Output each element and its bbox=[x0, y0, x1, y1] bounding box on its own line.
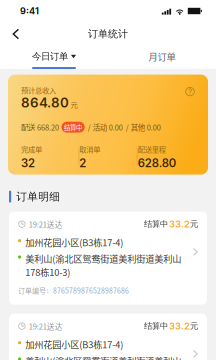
button[interactable]: 今日订单 bbox=[0, 46, 108, 69]
staticText: 2 bbox=[79, 156, 86, 170]
staticText: 月订单 bbox=[148, 50, 175, 63]
staticText: 33.2 bbox=[169, 320, 190, 332]
button[interactable]: 19:21送达 bbox=[9, 212, 207, 305]
staticText: 美利山(渝北区鸳鸯街道美利街道美利山178栋10-3) bbox=[25, 252, 181, 278]
staticText: 美利山(渝北区鸳鸯街道美利街道美利山178栋10-3) bbox=[25, 354, 181, 360]
staticText: 结算中 bbox=[144, 219, 168, 229]
staticText: 订单统计 bbox=[88, 28, 128, 40]
staticText: / 活动 0.00 bbox=[88, 122, 123, 133]
staticText: 订单编号：8765789876528987686 bbox=[18, 286, 129, 296]
staticText: 预计总收入 bbox=[21, 85, 56, 95]
staticText: 33.2 bbox=[169, 218, 190, 230]
button[interactable]: 收入说明 bbox=[185, 87, 195, 97]
staticText: 配送里程 bbox=[138, 144, 166, 154]
staticText: 配送 668.20 bbox=[21, 122, 59, 133]
staticText: 取消单 bbox=[79, 144, 100, 154]
staticText: 完成单 bbox=[21, 144, 42, 154]
staticText: 结算中 bbox=[64, 122, 82, 132]
button[interactable]: 19:21送达 bbox=[9, 314, 207, 360]
staticText: / 其他 0.00 bbox=[126, 122, 161, 133]
staticText: 19:21送达 bbox=[29, 321, 63, 332]
staticText: 19:21送达 bbox=[29, 219, 63, 230]
button[interactable]: 月订单 bbox=[108, 46, 216, 69]
staticText: 订单明细 bbox=[16, 190, 60, 203]
staticText: 元 bbox=[70, 99, 77, 110]
staticText: 9:41 bbox=[20, 5, 39, 16]
staticText: 加州花园小区(B3栋17-4) bbox=[25, 338, 123, 351]
button[interactable]: 返回 bbox=[4, 23, 28, 45]
staticText: 元 bbox=[190, 321, 198, 331]
staticText: 加州花园小区(B3栋17-4) bbox=[25, 236, 123, 249]
staticText: 今日订单 bbox=[32, 51, 68, 62]
staticText: 864.80 bbox=[21, 95, 69, 111]
staticText: 元 bbox=[190, 219, 198, 229]
staticText: 32 bbox=[21, 156, 35, 170]
staticText: 628.80 bbox=[138, 156, 176, 170]
staticText: 结算中 bbox=[144, 321, 168, 331]
staticText: ? bbox=[188, 87, 192, 96]
